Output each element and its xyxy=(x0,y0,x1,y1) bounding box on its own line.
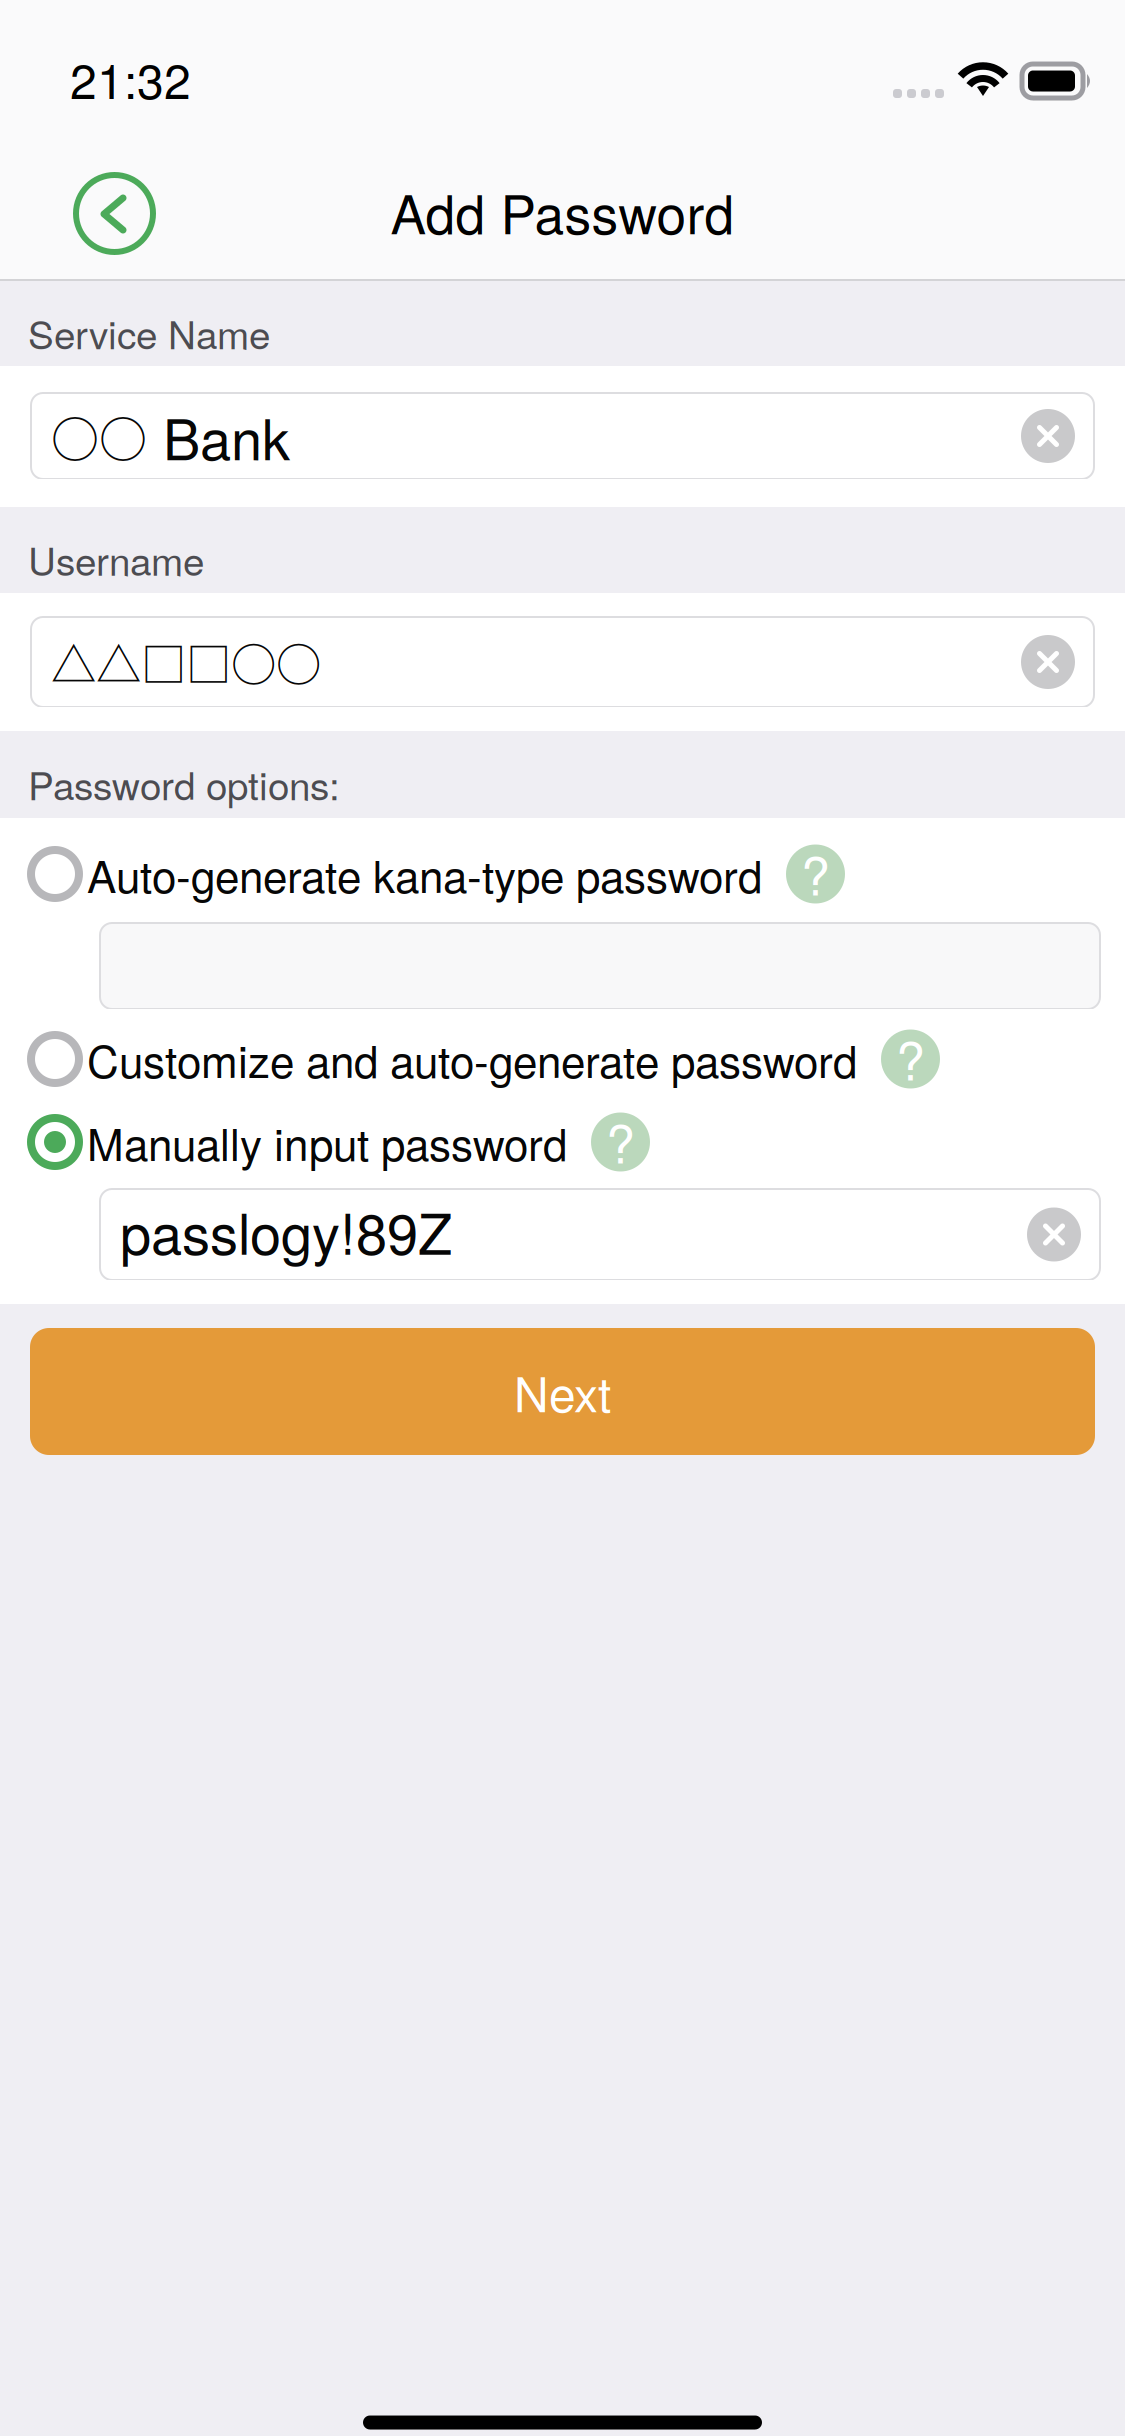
button[interactable]: Clear text xyxy=(1027,1207,1081,1261)
staticText: ? xyxy=(896,1021,925,1095)
staticText: Service Name xyxy=(28,305,270,360)
button[interactable]: Clear text xyxy=(1021,409,1075,463)
staticText: Bank xyxy=(147,396,290,476)
staticText: Manually input password xyxy=(87,1110,567,1173)
button[interactable]: Next xyxy=(0,1328,1125,1455)
staticText: △△□□○○ xyxy=(51,629,321,695)
button[interactable]: Back xyxy=(73,172,156,255)
staticText: ? xyxy=(606,1104,635,1178)
button[interactable]: Clear text xyxy=(1021,635,1075,689)
staticText: 21:32 xyxy=(70,44,191,113)
staticText: Password options: xyxy=(28,756,340,811)
staticText: Username xyxy=(28,531,204,587)
button[interactable]: Help xyxy=(881,1029,940,1088)
staticText: Add Password xyxy=(390,173,734,249)
staticText: ? xyxy=(801,836,830,910)
button[interactable]: Auto-generate kana-type password xyxy=(0,840,1125,908)
button[interactable]: Manually input password xyxy=(0,1108,1125,1176)
button[interactable]: Help xyxy=(786,844,845,903)
staticText: passlogy!89Z xyxy=(120,1190,452,1271)
staticText: Next xyxy=(514,1357,611,1426)
button[interactable]: Help xyxy=(591,1112,650,1171)
button[interactable]: Customize and auto-generate password xyxy=(0,1025,1125,1093)
staticText: Auto-generate kana-type password xyxy=(87,842,762,905)
staticText: ○○ xyxy=(51,401,147,471)
staticText: Customize and auto-generate password xyxy=(87,1027,857,1090)
